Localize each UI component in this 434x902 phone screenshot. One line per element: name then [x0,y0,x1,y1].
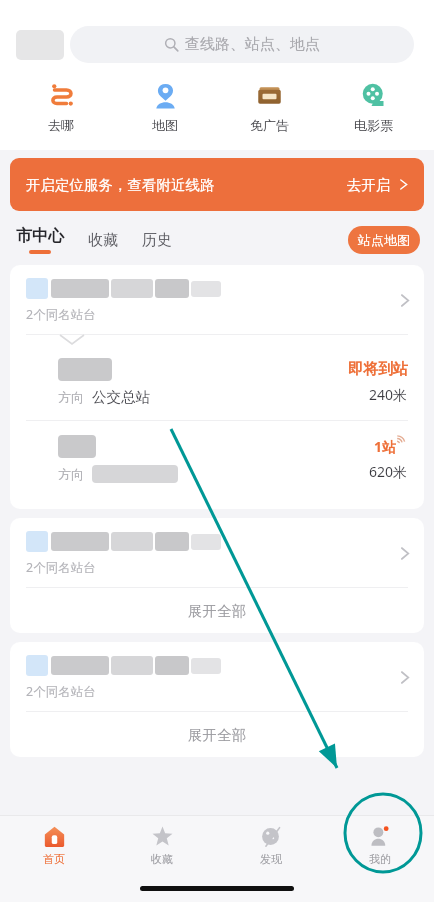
button[interactable]: 地图 [122,80,208,134]
staticText: 首页 [43,852,65,866]
staticText: 方向 [58,466,84,482]
other: Open station [399,672,410,683]
staticText: 2个同名站台 [26,683,96,700]
staticText: 电影票 [354,117,393,133]
button[interactable]: 2个同名站台 [10,518,424,587]
button[interactable]: 方向 [10,344,424,420]
staticText: 历史 [142,231,172,250]
staticText: 620米 [369,462,408,481]
staticText: 我的 [369,852,391,866]
button[interactable]: 发现 [216,816,325,874]
button[interactable]: 电影票 [330,80,416,134]
staticText: 240米 [369,385,408,404]
button[interactable]: 去哪 [18,80,104,134]
staticText: 展开全部 [188,726,246,744]
button[interactable]: 查线路、站点、地点 [70,26,414,63]
staticText: 公交总站 [92,388,150,406]
button[interactable]: 站点地图 [348,226,420,254]
staticText: 去哪 [48,117,74,133]
staticText: 2个同名站台 [26,306,96,323]
staticText: 开启定位服务，查看附近线路 [26,176,215,194]
staticText: 收藏 [88,231,118,250]
button[interactable]: 2个同名站台 [10,642,424,711]
staticText: 收藏 [151,852,173,866]
button[interactable]: 收藏 [108,816,216,874]
staticText: 展开全部 [188,602,246,620]
button[interactable]: 展开全部 [10,712,424,757]
staticText: 2个同名站台 [26,559,96,576]
other: Open station [399,548,410,559]
staticText: 地图 [152,117,178,133]
button[interactable]: 展开全部 [10,588,424,633]
staticText: 站点地图 [358,232,410,248]
button[interactable]: 免广告 [226,80,312,134]
staticText: 查线路、站点、地点 [185,35,320,54]
staticText: 方向 [58,389,84,405]
staticText: 即将到站 [348,360,408,379]
button[interactable]: 历史 [140,224,174,257]
staticText: 市中心 [16,226,64,246]
button[interactable]: 2个同名站台 [10,265,424,334]
button[interactable]: 开启定位服务，查看附近线路 [10,158,424,211]
other: Open station [399,295,410,306]
staticText: 去开启 [347,176,391,194]
button[interactable]: 市中心 [14,226,66,254]
button[interactable]: 我的 [325,816,434,874]
staticText: 免广告 [250,117,289,133]
button[interactable]: 收藏 [86,224,120,257]
staticText: 发现 [260,852,282,866]
staticText: 1站 [374,437,397,456]
button[interactable]: 方向 [10,421,424,497]
button[interactable]: 首页 [0,816,108,874]
